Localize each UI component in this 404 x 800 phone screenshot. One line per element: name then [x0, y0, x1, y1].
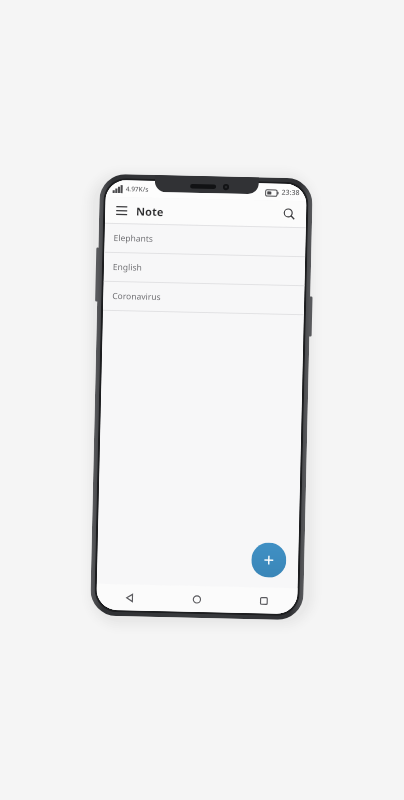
button[interactable]: Back	[96, 584, 164, 611]
button[interactable]: Recent apps	[230, 587, 298, 614]
staticText: 4.97K/s	[126, 184, 149, 194]
button[interactable]: Coronavirus	[103, 282, 305, 314]
button[interactable]: Elephants	[104, 224, 306, 256]
staticText: Elephants	[113, 232, 154, 245]
staticText: Coronavirus	[112, 290, 161, 303]
button[interactable]: Home	[163, 585, 231, 613]
staticText: Note	[136, 203, 164, 219]
button[interactable]: Search notes	[279, 204, 299, 224]
staticText: English	[113, 261, 142, 274]
button[interactable]: Add note	[251, 542, 287, 578]
button[interactable]: English	[104, 253, 305, 285]
button[interactable]: Open navigation menu	[112, 201, 130, 219]
staticText: 23:38	[281, 188, 300, 198]
